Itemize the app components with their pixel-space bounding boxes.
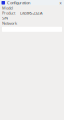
staticText: Configuration — [7, 0, 30, 5]
staticText: Lite/IRS-232-A — [20, 10, 43, 16]
staticText: Model — [2, 5, 13, 11]
staticText: x — [59, 0, 61, 5]
staticText: S/N — [2, 15, 8, 21]
button[interactable]: Close — [58, 1, 62, 5]
staticText: Product — [2, 10, 15, 16]
staticText: Network — [2, 20, 17, 26]
